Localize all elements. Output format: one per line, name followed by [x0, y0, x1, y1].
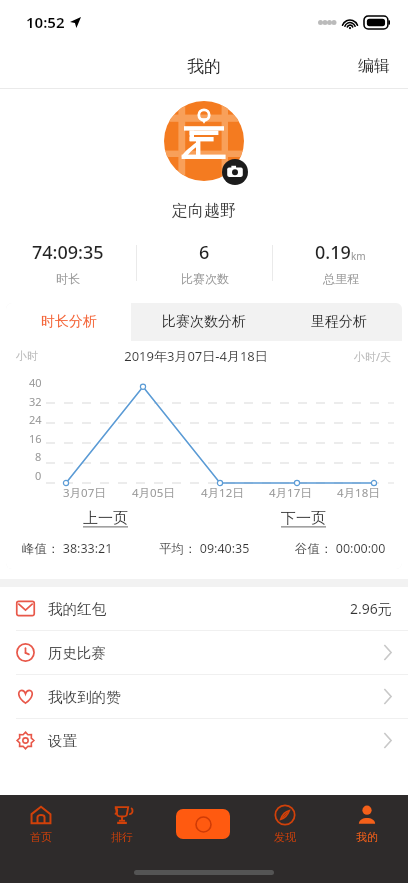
staticText: 8 — [35, 449, 42, 464]
staticText: 4月05日 — [132, 485, 175, 501]
button[interactable]: 历史比赛 — [0, 631, 408, 674]
staticText: 24 — [29, 412, 42, 427]
button[interactable]: 下一页 — [204, 505, 402, 532]
staticText: 谷值： 00:00:00 — [295, 540, 386, 557]
staticText: 总里程 — [323, 271, 359, 286]
button[interactable]: Change avatar — [158, 101, 250, 193]
button[interactable]: 我的红包 — [0, 587, 408, 630]
staticText: 设置 — [48, 732, 77, 750]
button[interactable]: Record — [162, 795, 244, 853]
staticText: 平均： 09:40:35 — [159, 540, 250, 557]
staticText: 时长分析 — [41, 313, 97, 331]
button[interactable]: 上一页 — [6, 505, 204, 532]
button[interactable]: 我收到的赞 — [0, 675, 408, 718]
button[interactable]: 设置 — [0, 719, 408, 762]
staticText: 首页 — [30, 830, 52, 844]
staticText: 2019年3月07日-4月18日 — [38, 347, 354, 365]
staticText: 0.19 — [315, 240, 351, 265]
staticText: 时长 — [56, 271, 80, 286]
staticText: 32 — [29, 394, 42, 409]
staticText: 10:52 — [26, 12, 65, 32]
staticText: 下一页 — [281, 509, 326, 528]
staticText: 16 — [29, 431, 42, 446]
staticText: 6 — [199, 240, 210, 265]
staticText: 我的 — [356, 830, 378, 844]
staticText: 4月12日 — [201, 485, 244, 501]
staticText: 编辑 — [358, 56, 390, 76]
button[interactable]: 时长分析 — [6, 303, 131, 341]
button[interactable]: 排行 — [81, 795, 162, 853]
staticText: km — [351, 249, 366, 263]
staticText: 我的 — [187, 56, 221, 77]
staticText: 排行 — [111, 830, 133, 844]
button[interactable]: 首页 — [0, 795, 81, 853]
staticText: 小时/天 — [354, 349, 392, 364]
staticText: 发现 — [274, 830, 296, 844]
staticText: 比赛次数分析 — [162, 313, 246, 331]
button[interactable]: 比赛次数分析 — [131, 303, 276, 341]
staticText: 比赛次数 — [181, 271, 229, 286]
staticText: 4月17日 — [269, 485, 312, 501]
staticText: 我的红包 — [48, 600, 106, 618]
staticText: 小时 — [16, 349, 38, 363]
staticText: 2.96元 — [350, 599, 392, 618]
staticText: 0 — [35, 468, 42, 483]
staticText: 峰值： 38:33:21 — [22, 540, 113, 557]
staticText: 定向越野 — [0, 201, 408, 221]
staticText: 40 — [29, 375, 42, 390]
button[interactable]: 发现 — [244, 795, 326, 853]
staticText: 4月18日 — [337, 485, 380, 501]
button[interactable]: 我的 — [326, 795, 408, 853]
button[interactable]: 编辑 — [340, 46, 408, 86]
staticText: 上一页 — [83, 509, 128, 528]
button[interactable]: 里程分析 — [276, 303, 402, 341]
staticText: 里程分析 — [311, 313, 367, 331]
staticText: 我收到的赞 — [48, 688, 121, 706]
staticText: 3月07日 — [63, 485, 106, 501]
staticText: 历史比赛 — [48, 644, 106, 662]
staticText: 74:09:35 — [32, 240, 104, 265]
